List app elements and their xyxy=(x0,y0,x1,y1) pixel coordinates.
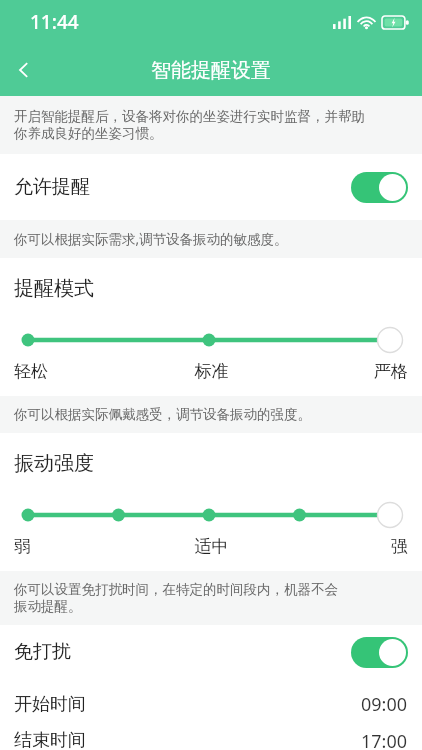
staticText: 振动强度 xyxy=(14,451,94,476)
staticText: 提醒模式 xyxy=(14,276,94,301)
staticText: 你可以根据实际需求,调节设备振动的敏感度。 xyxy=(14,230,288,248)
staticText: 结束时间 xyxy=(14,729,86,750)
button[interactable]: Back xyxy=(0,46,48,94)
button[interactable]: 结束时间 xyxy=(0,729,422,750)
staticText: 开始时间 xyxy=(14,693,86,716)
button[interactable]: 振动强度 xyxy=(14,502,408,528)
staticText: 09:00 xyxy=(361,692,408,717)
button[interactable]: 开始时间 xyxy=(0,679,422,729)
staticText: 允许提醒 xyxy=(14,175,90,199)
staticText: 免打扰 xyxy=(14,640,71,664)
staticText: 适中 xyxy=(146,536,277,557)
staticText: 你养成良好的坐姿习惯。 xyxy=(14,125,163,142)
staticText: 轻松 xyxy=(14,361,146,382)
staticText: 智能提醒设置 xyxy=(151,58,271,83)
staticText: 振动提醒。 xyxy=(14,598,82,615)
staticText: 17:00 xyxy=(361,729,408,750)
staticText: 11:44 xyxy=(30,9,79,35)
button[interactable]: 提醒模式 xyxy=(14,327,408,353)
staticText: 开启智能提醒后，设备将对你的坐姿进行实时监督，并帮助 xyxy=(14,108,365,125)
staticText: 你可以根据实际佩戴感受，调节设备振动的强度。 xyxy=(14,406,311,423)
staticText: 强 xyxy=(277,536,408,557)
staticText: 标准 xyxy=(146,361,277,382)
staticText: 你可以设置免打扰时间，在特定的时间段内，机器不会 xyxy=(14,581,338,598)
staticText: 严格 xyxy=(277,361,408,382)
button[interactable]: 免打扰 xyxy=(0,625,422,679)
staticText: 弱 xyxy=(14,536,146,557)
button[interactable]: 允许提醒 xyxy=(0,154,422,220)
